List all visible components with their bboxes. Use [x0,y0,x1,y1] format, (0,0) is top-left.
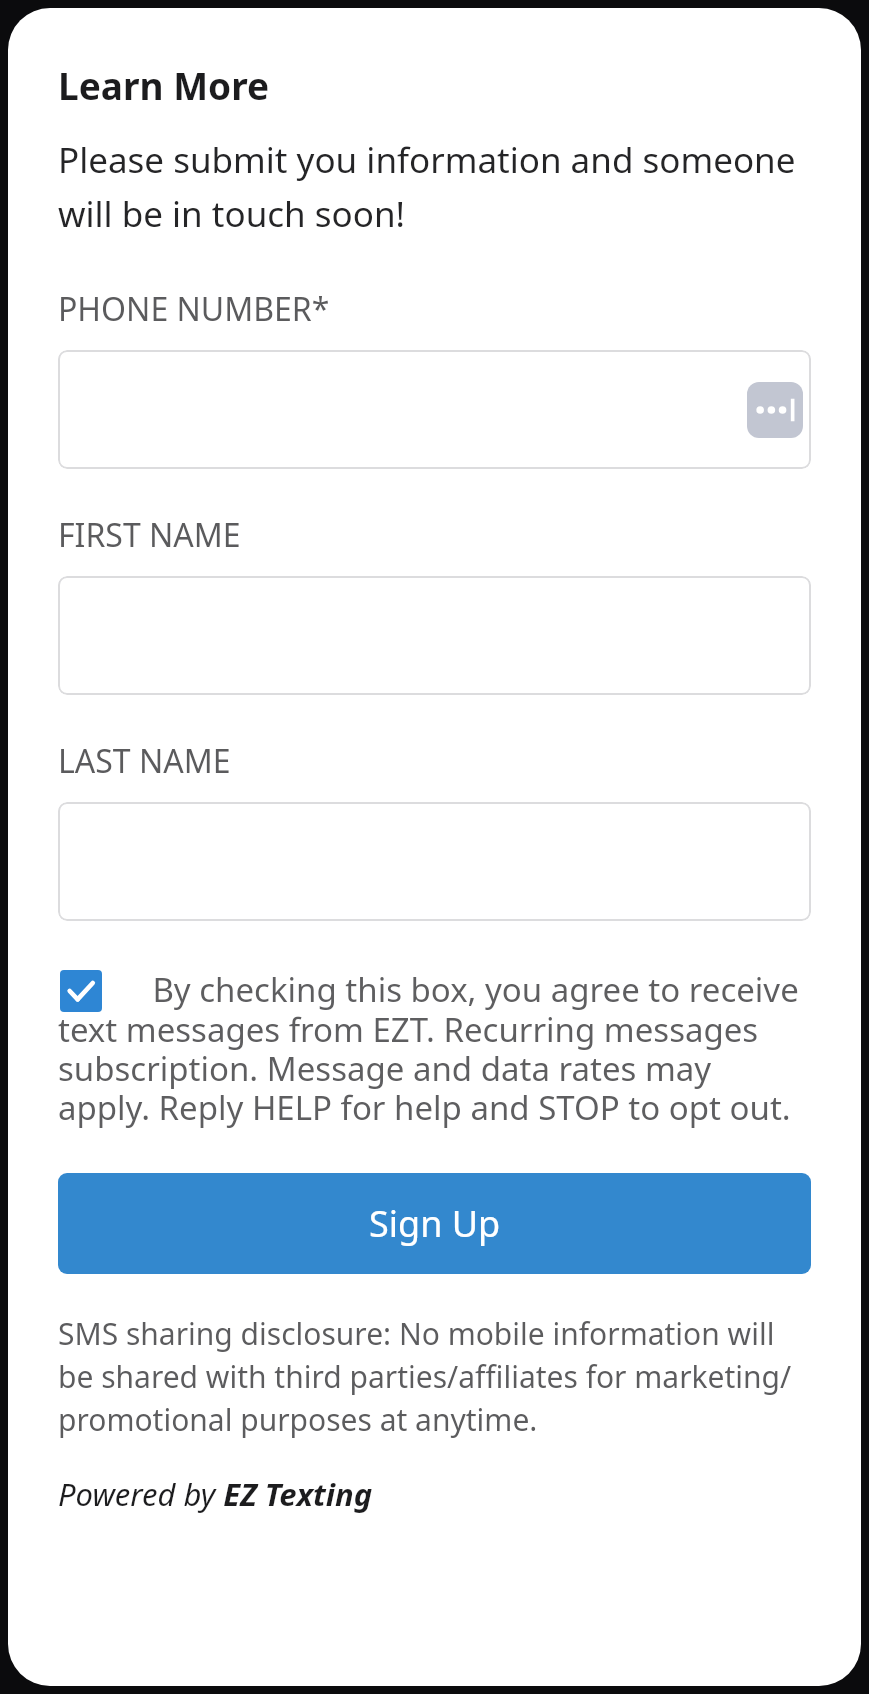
staticText: LAST NAME [58,739,231,783]
button[interactable]: Sign Up [58,1173,811,1274]
staticText: Powered by EZ Texting [58,1473,373,1515]
staticText: Learn More [58,60,270,110]
staticText: Sign Up [369,1199,501,1248]
button[interactable] [58,576,811,695]
staticText: PHONE NUMBER* [58,287,330,331]
staticText: FIRST NAME [58,513,241,557]
other: Autofill password [747,382,803,438]
staticText: By checking this box, you agree to recei… [58,967,811,1129]
staticText: SMS sharing disclosure: No mobile inform… [58,1313,811,1440]
staticText: Please submit you information and someon… [58,136,811,237]
button[interactable] [58,802,811,921]
button[interactable]: Autofill password [58,350,811,469]
button[interactable]: Agree to receive text messages [60,970,102,1012]
